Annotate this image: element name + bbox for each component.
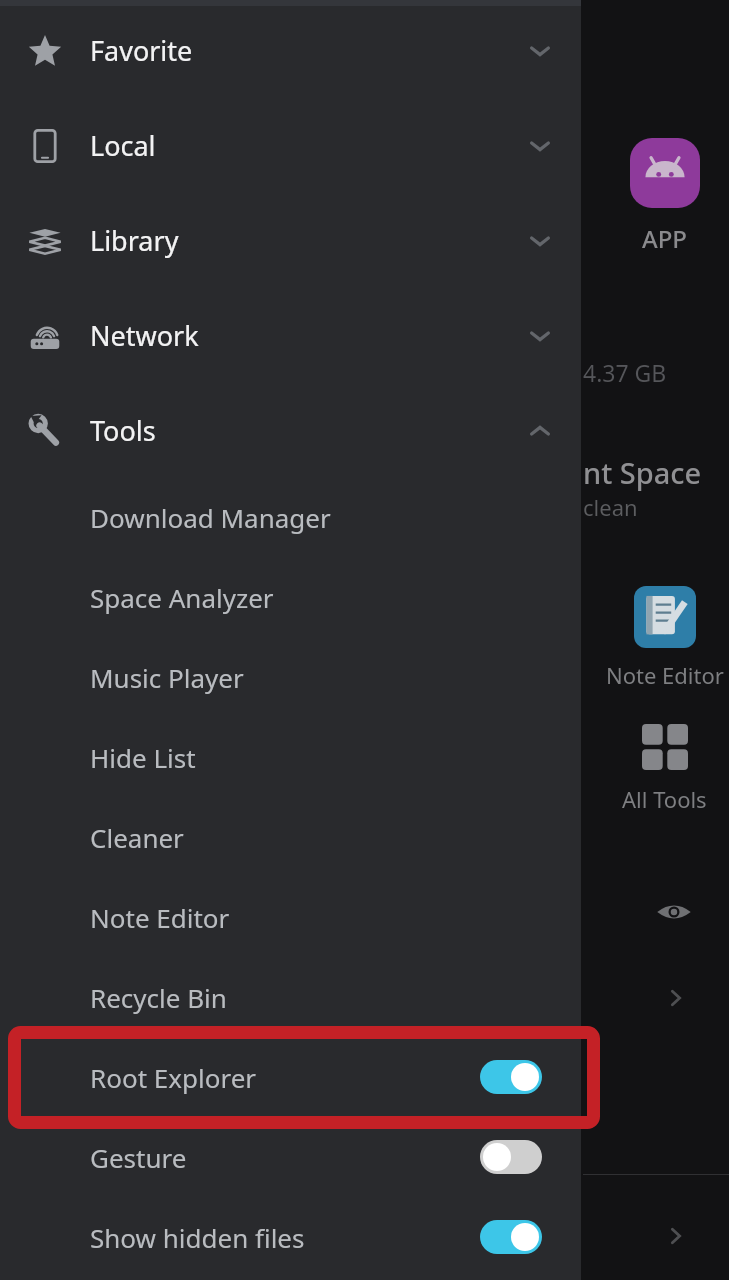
staticText: nt Space [583, 453, 702, 492]
staticText: All Tools [622, 784, 707, 814]
staticText: Local [90, 127, 156, 164]
staticText: Recycle Bin [90, 980, 227, 1015]
staticText: 4.37 GB [583, 357, 667, 388]
staticText: Space Analyzer [90, 580, 274, 615]
button[interactable]: Off [480, 1140, 542, 1174]
staticText: Download Manager [90, 500, 331, 535]
button[interactable]: Recycle Bin [0, 957, 581, 1037]
staticText: Tools [90, 412, 156, 449]
button[interactable]: On [480, 1060, 542, 1094]
button[interactable]: On [480, 1220, 542, 1254]
staticText: Note Editor [606, 660, 724, 690]
staticText: Network [90, 317, 199, 354]
button[interactable]: Gesture [0, 1117, 581, 1197]
staticText: clean [583, 492, 638, 522]
button[interactable]: Download Manager [0, 477, 581, 557]
staticText: Music Player [90, 660, 244, 695]
button[interactable]: Music Player [0, 637, 581, 717]
button[interactable]: More [663, 985, 689, 1011]
staticText: Library [90, 222, 179, 259]
button[interactable]: Root Explorer [0, 1037, 581, 1117]
staticText: Favorite [90, 32, 193, 69]
staticText: Hide List [90, 740, 196, 775]
staticText: Root Explorer [90, 1060, 257, 1095]
staticText: Gesture [90, 1140, 187, 1175]
button[interactable]: More [663, 1223, 689, 1249]
button[interactable]: All Tools [600, 724, 729, 814]
button[interactable]: Library [0, 193, 581, 288]
button[interactable]: Network [0, 288, 581, 383]
button[interactable]: Note Editor [600, 586, 729, 690]
button[interactable]: Note Editor [0, 877, 581, 957]
button[interactable]: Favorite [0, 3, 581, 98]
staticText: APP [642, 222, 687, 255]
staticText: Cleaner [90, 820, 184, 855]
button[interactable]: Hide List [0, 717, 581, 797]
button[interactable]: APP [600, 138, 729, 255]
button[interactable]: Show hidden [655, 893, 693, 931]
button[interactable]: Show hidden files [0, 1197, 581, 1277]
button[interactable]: Local [0, 98, 581, 193]
button[interactable]: Tools [0, 383, 581, 478]
staticText: Note Editor [90, 900, 230, 935]
button[interactable]: Space Analyzer [0, 557, 581, 637]
button[interactable]: Cleaner [0, 797, 581, 877]
staticText: Show hidden files [90, 1220, 305, 1255]
